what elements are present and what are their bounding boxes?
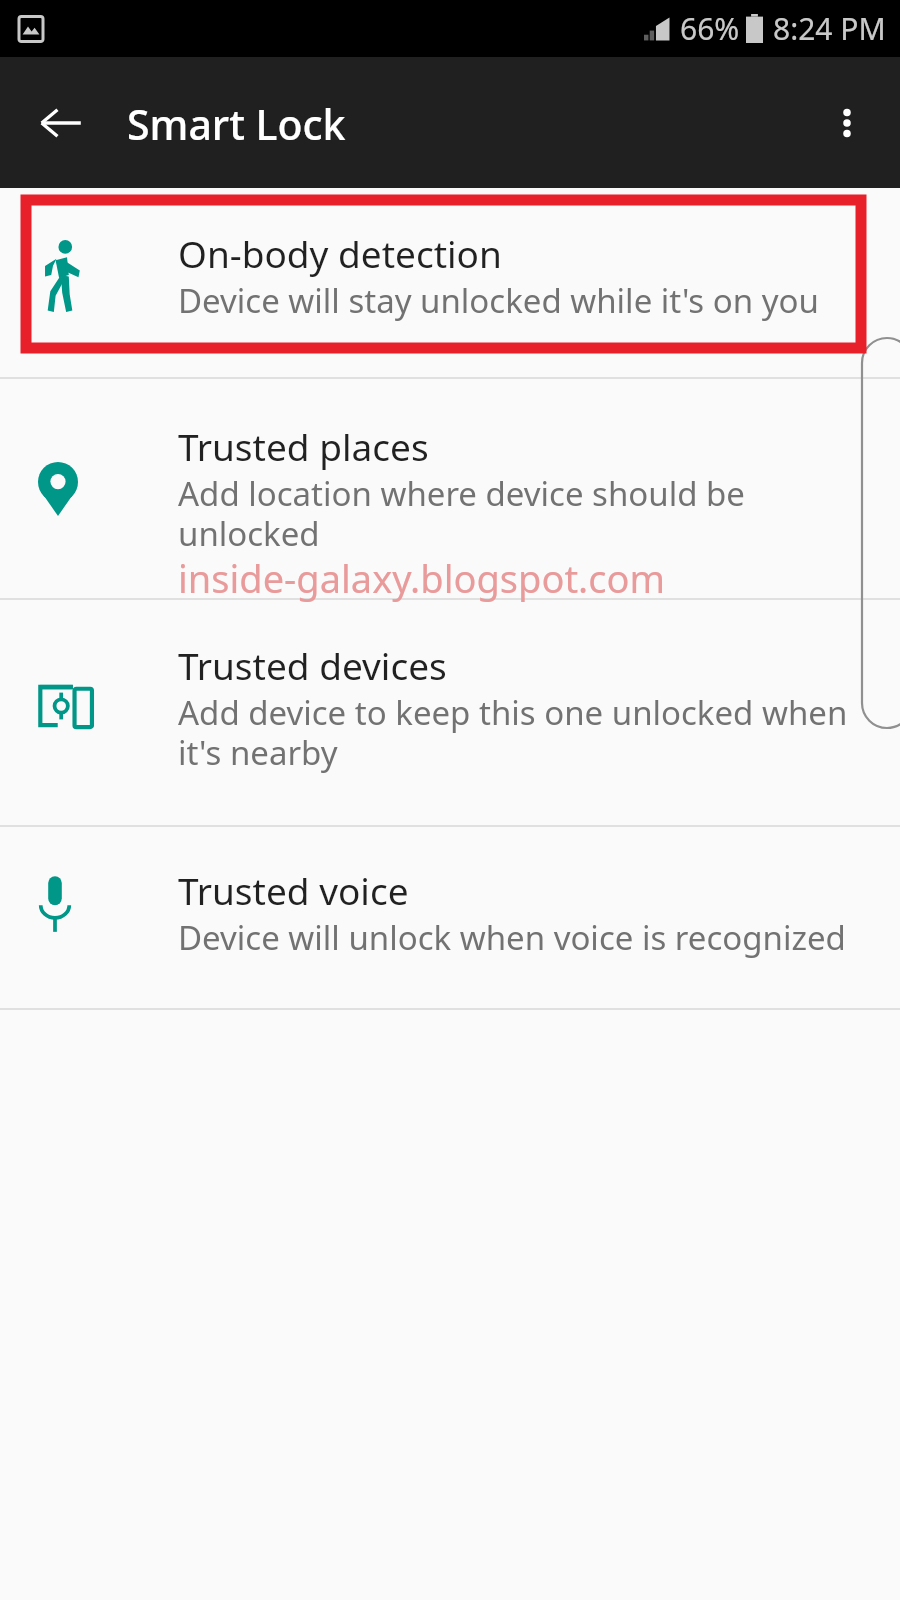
button[interactable]: Trusted voice: [0, 827, 900, 1008]
staticText: Trusted voice: [178, 865, 409, 915]
staticText: unlocked: [178, 511, 320, 556]
staticText: inside-galaxy.blogspot.com: [178, 552, 666, 604]
button[interactable]: On-body detection: [0, 188, 900, 377]
button[interactable]: Trusted places: [0, 379, 900, 598]
button[interactable]: Back: [22, 84, 100, 162]
staticText: Trusted devices: [178, 640, 447, 690]
staticText: 66%: [680, 8, 740, 49]
staticText: Add location where device should be: [178, 471, 745, 516]
staticText: Device will stay unlocked while it's on …: [178, 278, 819, 323]
button[interactable]: More options: [808, 84, 886, 162]
staticText: Device will unlock when voice is recogni…: [178, 915, 846, 960]
staticText: 8:24 PM: [773, 8, 886, 49]
button[interactable]: Trusted devices: [0, 600, 900, 825]
staticText: Trusted places: [178, 421, 429, 471]
staticText: Smart Lock: [127, 96, 346, 152]
staticText: Add device to keep this one unlocked whe…: [178, 690, 848, 735]
staticText: On-body detection: [178, 228, 502, 278]
staticText: it's nearby: [178, 730, 338, 775]
